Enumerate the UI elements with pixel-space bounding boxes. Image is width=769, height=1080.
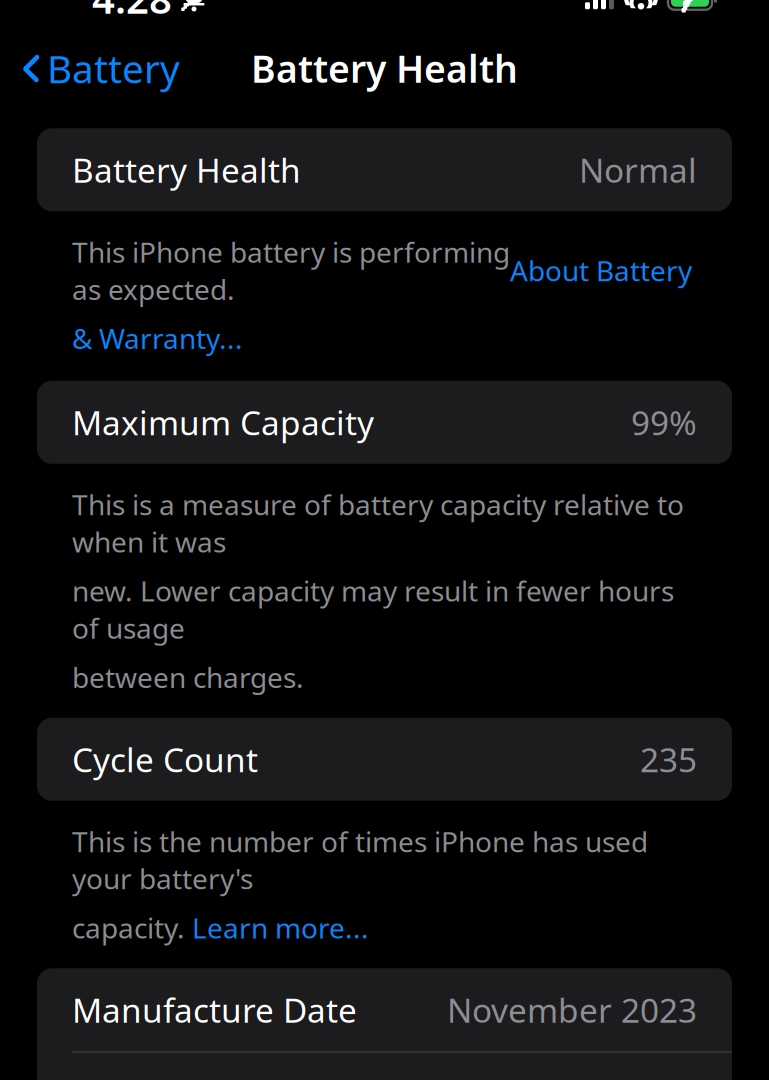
staticText: capacity. <box>72 909 192 946</box>
staticText: This iPhone battery is performing as exp… <box>72 233 510 308</box>
staticText: About Battery <box>510 252 692 289</box>
staticText: & Warranty... <box>72 320 243 357</box>
staticText: Battery Health <box>72 148 301 192</box>
button[interactable]: Battery <box>0 35 194 102</box>
staticText: Normal <box>579 148 697 192</box>
staticText: Battery Health <box>251 43 518 93</box>
staticText: 4:28 <box>92 0 172 25</box>
staticText: new. Lower capacity may result in fewer … <box>72 572 674 647</box>
button[interactable]: Cycle Count <box>37 718 732 801</box>
button[interactable]: Maximum Capacity <box>37 381 732 464</box>
staticText: between charges. <box>72 658 304 696</box>
staticText: This is the number of times iPhone has u… <box>72 823 648 897</box>
staticText: 235 <box>640 737 697 781</box>
staticText: Battery <box>47 43 180 94</box>
staticText: Learn more... <box>192 909 369 946</box>
staticText: Maximum Capacity <box>72 400 374 444</box>
staticText: Manufacture Date <box>72 988 357 1032</box>
staticText: This is a measure of battery capacity re… <box>72 486 684 560</box>
button[interactable]: Battery Health <box>37 128 732 211</box>
staticText: November 2023 <box>447 988 697 1032</box>
staticText: Cycle Count <box>72 737 258 781</box>
staticText: 99% <box>631 400 697 444</box>
button[interactable]: Manufacture Date <box>37 968 732 1051</box>
